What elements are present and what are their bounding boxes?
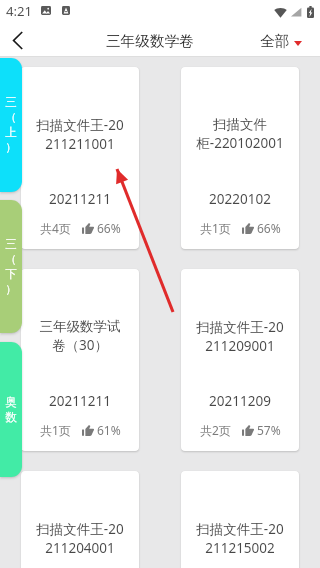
staticText: 20211209 bbox=[181, 392, 299, 410]
staticText: 扫描文件王-20 211211001 bbox=[21, 116, 139, 153]
button[interactable]: 三 （ 下 ） bbox=[0, 200, 22, 333]
staticText: 共1页 bbox=[40, 422, 71, 438]
staticText: 奥 数 bbox=[5, 395, 17, 425]
button[interactable]: 全部 bbox=[260, 32, 302, 50]
staticText: 20211211 bbox=[21, 190, 139, 208]
button[interactable]: 奥 数 bbox=[0, 342, 22, 477]
staticText: 66% bbox=[97, 220, 121, 236]
staticText: 扫描文件王-20 211209001 bbox=[181, 318, 299, 355]
staticText: 66% bbox=[257, 220, 281, 236]
staticText: 全部 bbox=[260, 32, 290, 50]
button[interactable]: 三 （ 上 ） bbox=[0, 58, 22, 192]
button[interactable]: 扫描文件王-20 211204001 bbox=[21, 471, 139, 568]
staticText: 共4页 bbox=[40, 220, 71, 236]
staticText: 扫描文件王-20 211204001 bbox=[21, 520, 139, 557]
button[interactable]: Back bbox=[0, 24, 36, 57]
staticText: 20220102 bbox=[181, 190, 299, 208]
staticText: 共2页 bbox=[200, 422, 231, 438]
staticText: 三年级数学试 卷（30） bbox=[21, 318, 139, 354]
staticText: 4:21 bbox=[6, 2, 33, 20]
staticText: 三 （ 下 ） bbox=[5, 237, 17, 297]
button[interactable]: 扫描文件王-20 211211001 bbox=[21, 67, 139, 249]
staticText: 三年级数学卷 bbox=[106, 32, 194, 50]
button[interactable]: 扫描文件 柜-220102001 bbox=[181, 67, 299, 249]
button[interactable]: 扫描文件王-20 211215002 bbox=[181, 471, 299, 568]
staticText: 61% bbox=[97, 422, 121, 438]
button[interactable]: 三年级数学试 卷（30） bbox=[21, 269, 139, 451]
staticText: 扫描文件 柜-220102001 bbox=[181, 116, 299, 152]
staticText: 57% bbox=[257, 422, 281, 438]
staticText: 共1页 bbox=[200, 220, 231, 236]
staticText: 三 （ 上 ） bbox=[5, 95, 17, 155]
button[interactable]: 扫描文件王-20 211209001 bbox=[181, 269, 299, 451]
staticText: 扫描文件王-20 211215002 bbox=[181, 520, 299, 557]
staticText: 20211211 bbox=[21, 392, 139, 410]
